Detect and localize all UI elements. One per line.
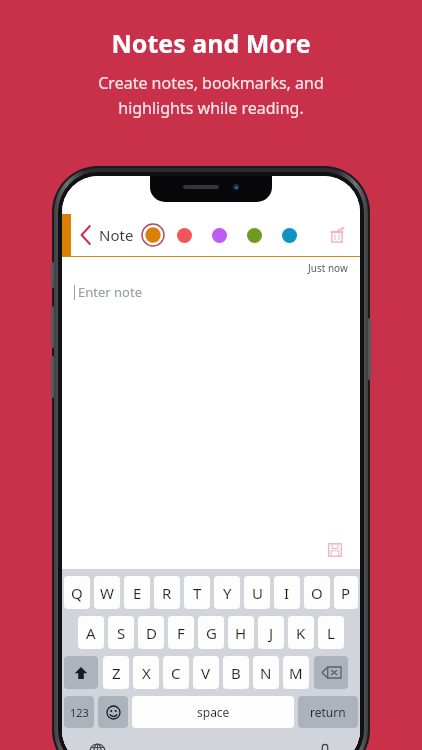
button[interactable]: Delete note <box>324 222 350 248</box>
button[interactable]: Colour swatch <box>246 227 262 243</box>
staticText: return <box>310 704 346 720</box>
staticText: G <box>206 623 217 643</box>
button[interactable]: Shift <box>64 656 98 689</box>
button[interactable]: O <box>304 576 330 609</box>
staticText: K <box>296 623 306 643</box>
staticText: C <box>171 663 181 683</box>
button[interactable]: Dictate <box>312 738 338 750</box>
staticText: J <box>269 623 274 643</box>
button[interactable]: Z <box>103 656 129 689</box>
button[interactable]: T <box>184 576 210 609</box>
button[interactable]: E <box>124 576 150 609</box>
staticText: N <box>260 663 272 683</box>
staticText: highlights while reading. <box>118 97 304 119</box>
button[interactable]: X <box>133 656 159 689</box>
button[interactable]: Backspace <box>314 656 348 689</box>
button[interactable]: M <box>283 656 309 689</box>
staticText: L <box>327 623 335 643</box>
button[interactable]: Save note <box>324 539 346 561</box>
staticText: X <box>142 663 151 683</box>
button[interactable]: L <box>318 616 344 649</box>
staticText: Notes and More <box>111 26 311 60</box>
button[interactable]: Colour swatch <box>281 227 297 243</box>
button[interactable]: U <box>244 576 270 609</box>
button[interactable]: V <box>193 656 219 689</box>
button[interactable]: Colour swatch <box>176 227 192 243</box>
staticText: space <box>197 704 230 720</box>
button[interactable]: P <box>334 576 358 609</box>
button[interactable]: R <box>154 576 180 609</box>
button[interactable]: Y <box>214 576 240 609</box>
staticText: U <box>252 583 263 603</box>
button[interactable]: Orange colour <box>141 223 165 247</box>
staticText: Create notes, bookmarks, and <box>98 72 324 94</box>
staticText: F <box>177 623 185 643</box>
button[interactable]: 123 <box>64 696 94 728</box>
staticText: V <box>201 663 211 683</box>
staticText: E <box>133 583 142 603</box>
button[interactable]: Q <box>64 576 90 609</box>
staticText: Note <box>99 225 134 245</box>
staticText: M <box>289 663 303 683</box>
button[interactable]: H <box>228 616 254 649</box>
staticText: O <box>311 583 323 603</box>
button[interactable]: C <box>163 656 189 689</box>
staticText: Enter note <box>78 283 142 301</box>
button[interactable]: Change language <box>84 738 110 750</box>
staticText: T <box>193 583 202 603</box>
button[interactable]: Back <box>76 221 96 249</box>
button[interactable]: I <box>274 576 300 609</box>
staticText: Just now <box>308 261 348 275</box>
button[interactable]: return <box>298 696 358 728</box>
staticText: A <box>86 623 96 643</box>
button[interactable]: D <box>138 616 164 649</box>
staticText: S <box>117 623 126 643</box>
button[interactable]: B <box>223 656 249 689</box>
button[interactable]: W <box>94 576 120 609</box>
staticText: 123 <box>70 705 89 720</box>
staticText: Q <box>71 583 83 603</box>
staticText: Y <box>223 583 232 603</box>
staticText: B <box>231 663 241 683</box>
staticText: P <box>341 583 351 603</box>
button[interactable]: space <box>132 696 294 728</box>
button[interactable]: G <box>198 616 224 649</box>
button[interactable]: Colour swatch <box>211 227 227 243</box>
button[interactable]: J <box>258 616 284 649</box>
staticText: R <box>162 583 172 603</box>
staticText: W <box>100 583 114 603</box>
staticText: D <box>146 623 157 643</box>
button[interactable]: S <box>108 616 134 649</box>
button[interactable]: K <box>288 616 314 649</box>
button[interactable]: A <box>78 616 104 649</box>
staticText: Z <box>112 663 121 683</box>
staticText: H <box>235 623 247 643</box>
button[interactable]: F <box>168 616 194 649</box>
button[interactable]: N <box>253 656 279 689</box>
button[interactable]: Emoji <box>98 696 128 728</box>
staticText: I <box>284 583 290 603</box>
